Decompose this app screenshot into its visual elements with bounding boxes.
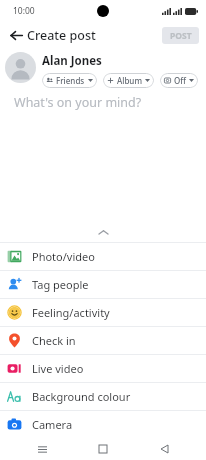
staticText: Photo/video xyxy=(32,249,95,264)
button[interactable]: Background colour xyxy=(0,383,206,410)
button[interactable]: Album xyxy=(103,73,154,88)
staticText: Background colour xyxy=(32,389,131,404)
button[interactable]: Check in xyxy=(0,327,206,354)
button[interactable]: Live video xyxy=(0,355,206,382)
staticText: Live video xyxy=(32,361,84,376)
staticText: Album xyxy=(117,75,142,86)
button[interactable]: Off xyxy=(160,73,198,88)
staticText: Alan Jones xyxy=(42,53,102,69)
staticText: 10:00 xyxy=(13,5,35,17)
button[interactable]: Back xyxy=(6,25,26,45)
button[interactable]: Recents xyxy=(34,441,50,457)
button[interactable]: Back xyxy=(156,441,172,457)
button[interactable]: Photo/video xyxy=(0,243,206,270)
button[interactable]: Camera xyxy=(0,411,206,438)
button[interactable]: Home xyxy=(95,441,111,457)
staticText: What's on your mind? xyxy=(14,94,142,111)
staticText: Check in xyxy=(32,333,76,348)
button[interactable]: Friends xyxy=(42,73,97,88)
button[interactable]: Profile photo xyxy=(5,52,36,83)
staticText: Tag people xyxy=(32,277,89,292)
staticText: Create post xyxy=(27,27,96,44)
staticText: Feeling/activity xyxy=(32,305,110,320)
button[interactable]: Collapse xyxy=(0,223,206,242)
staticText: POST xyxy=(170,30,192,42)
staticText: Friends xyxy=(56,75,85,86)
button[interactable]: POST xyxy=(162,27,199,44)
staticText: Camera xyxy=(32,417,73,432)
button[interactable]: Tag people xyxy=(0,271,206,298)
staticText: Off xyxy=(174,75,186,86)
button[interactable]: Feeling/activity xyxy=(0,299,206,326)
